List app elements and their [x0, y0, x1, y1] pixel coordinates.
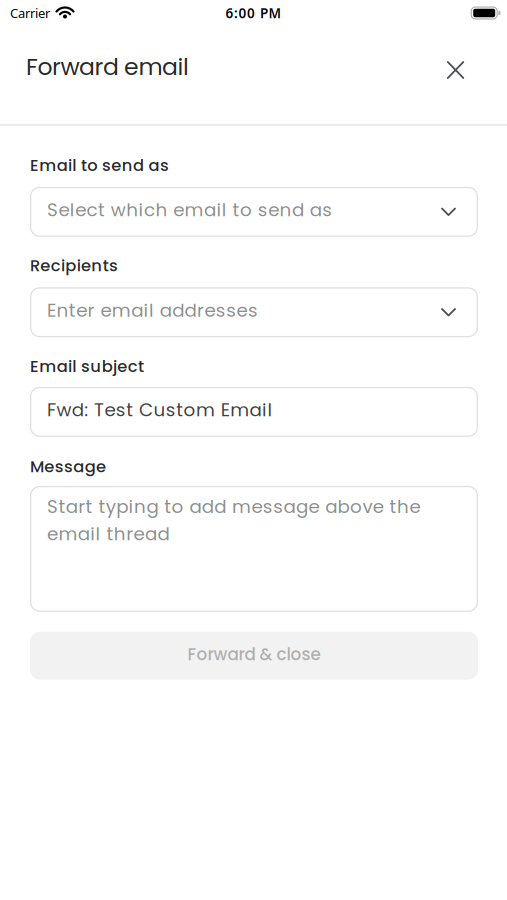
- staticText: Carrier: [10, 4, 50, 22]
- button[interactable]: Forward & close: [30, 632, 478, 680]
- staticText: Forward & close: [187, 642, 320, 666]
- button[interactable]: Start typing to add message above the: [30, 486, 478, 612]
- staticText: Email subject: [30, 355, 144, 378]
- staticText: Message: [30, 455, 106, 478]
- staticText: Recipients: [30, 254, 118, 277]
- staticText: email thread: [47, 521, 169, 547]
- staticText: Enter email addresses: [47, 297, 258, 323]
- staticText: Forward email: [26, 50, 189, 83]
- button[interactable]: Enter email addresses: [30, 287, 478, 337]
- button[interactable]: Fwd: Test Custom Email: [30, 387, 478, 437]
- staticText: Email to send as: [30, 154, 169, 177]
- staticText: Start typing to add message above the: [47, 494, 420, 519]
- button[interactable]: Close: [436, 43, 475, 90]
- staticText: Select which email to send as: [47, 197, 332, 223]
- staticText: 6:00 PM: [225, 4, 281, 22]
- button[interactable]: Select which email to send as: [30, 187, 478, 237]
- staticText: Fwd: Test Custom Email: [47, 397, 272, 423]
